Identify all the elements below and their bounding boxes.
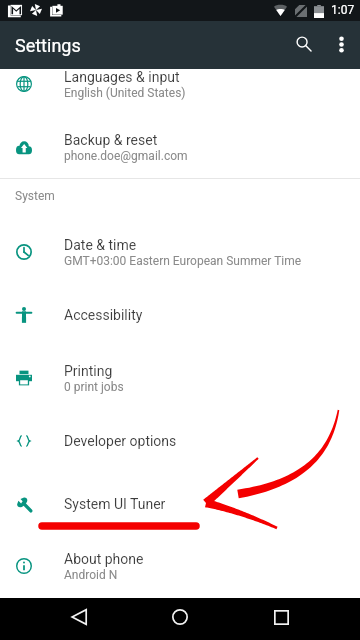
staticText: GMT+03:00 Eastern European Summer Time — [64, 254, 302, 268]
button[interactable]: Back — [55, 596, 103, 638]
staticText: System — [15, 189, 55, 203]
staticText: System UI Tuner — [64, 496, 166, 512]
staticText: Printing — [64, 363, 113, 379]
button[interactable]: More options — [321, 24, 360, 64]
staticText: phone.doe@gmail.com — [64, 149, 188, 163]
staticText: Backup & reset — [64, 132, 158, 148]
staticText: Date & time — [64, 237, 137, 253]
button[interactable]: Date & time — [0, 220, 360, 283]
button[interactable]: Backup & reset — [0, 115, 360, 178]
staticText: Accessibility — [64, 307, 143, 323]
button[interactable]: System UI Tuner — [0, 472, 360, 535]
staticText: Languages & input — [64, 69, 180, 85]
staticText: Android N — [64, 568, 118, 582]
staticText: Settings — [15, 35, 81, 56]
button[interactable]: Home — [156, 596, 204, 638]
button[interactable]: Recents — [257, 596, 305, 638]
staticText: English (United States) — [64, 86, 186, 100]
button[interactable]: Printing — [0, 346, 360, 409]
staticText: 0 print jobs — [64, 380, 124, 394]
button[interactable]: About phone — [0, 534, 360, 597]
button[interactable]: Languages & input — [0, 69, 360, 115]
staticText: Developer options — [64, 433, 177, 449]
staticText: About phone — [64, 551, 144, 567]
button[interactable]: Search — [284, 24, 324, 64]
button[interactable]: Accessibility — [0, 283, 360, 346]
button[interactable]: Developer options — [0, 409, 360, 472]
staticText: 1:07 — [331, 3, 355, 17]
